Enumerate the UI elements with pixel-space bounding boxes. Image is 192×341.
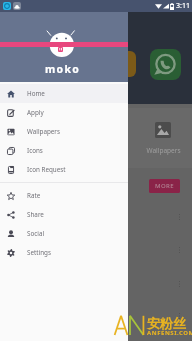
button[interactable]: WhatsApp bbox=[150, 49, 181, 80]
staticText: Social bbox=[27, 229, 45, 238]
staticText: moko bbox=[45, 62, 81, 76]
button[interactable]: Icons bbox=[0, 141, 128, 160]
button[interactable]: Wallpapers bbox=[0, 122, 128, 141]
button[interactable]: Wallpapers bbox=[134, 110, 192, 155]
button[interactable]: App bbox=[112, 51, 136, 77]
button[interactable]: Settings bbox=[0, 243, 128, 262]
button[interactable]: Rate bbox=[0, 186, 128, 205]
staticText: 3:11 bbox=[176, 1, 190, 11]
button[interactable]: MORE bbox=[149, 179, 180, 193]
staticText: Rate bbox=[27, 191, 41, 200]
staticText: Apply bbox=[27, 108, 44, 117]
staticText: Icons bbox=[27, 146, 43, 155]
staticText: 安粉丝 bbox=[147, 315, 186, 331]
staticText: MORE bbox=[155, 182, 174, 190]
button[interactable]: Social bbox=[0, 224, 128, 243]
staticText: Icon Request bbox=[27, 165, 66, 174]
staticText: Wallpapers bbox=[27, 127, 60, 136]
staticText: Wallpapers bbox=[146, 146, 181, 155]
button[interactable]: Icon Request bbox=[0, 160, 128, 179]
staticText: Home bbox=[27, 89, 45, 98]
button[interactable]: Share bbox=[0, 205, 128, 224]
staticText: Share bbox=[27, 210, 44, 219]
button[interactable]: Apply bbox=[0, 103, 128, 122]
staticText: ANFENSI.COM bbox=[147, 329, 192, 337]
staticText: Settings bbox=[27, 248, 51, 257]
button[interactable]: Home bbox=[0, 84, 128, 103]
button[interactable]: More options bbox=[172, 309, 186, 323]
